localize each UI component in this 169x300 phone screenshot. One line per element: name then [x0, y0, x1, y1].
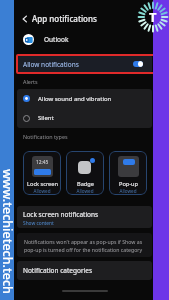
staticText: Allow sound and vibration — [38, 95, 112, 103]
button[interactable]: 12:45 — [23, 151, 61, 195]
staticText: Lock screen notifications — [23, 210, 99, 219]
staticText: Notification categories — [23, 266, 93, 275]
staticText: Alerts — [23, 78, 38, 85]
button[interactable]: Badge — [66, 151, 104, 195]
staticText: T — [149, 8, 157, 26]
staticText: 12:45 — [36, 159, 49, 166]
button[interactable]: Back — [19, 13, 30, 24]
staticText: Notifications won't appear as pop-ups if… — [24, 238, 147, 253]
staticText: Silent — [38, 114, 54, 122]
staticText: Allowed — [33, 188, 51, 194]
button[interactable]: Notification categories — [17, 261, 152, 280]
button[interactable]: Allow sound and vibration — [17, 89, 152, 108]
button[interactable]: Outlook — [23, 34, 69, 45]
staticText: Lock screen — [27, 180, 58, 188]
staticText: www.techietech.tech — [0, 169, 16, 294]
staticText: Allow notifications — [23, 60, 79, 69]
staticText: Outlook — [44, 35, 69, 44]
button[interactable]: Allow notifications — [17, 55, 152, 73]
staticText: Badge — [77, 180, 94, 188]
staticText: Notification types — [23, 133, 68, 140]
staticText: App notifications — [32, 13, 97, 24]
staticText: Pop-up — [119, 180, 138, 188]
staticText: Allowed — [76, 188, 94, 194]
button[interactable]: Silent — [17, 108, 152, 128]
button[interactable]: Pop-up — [109, 151, 147, 195]
staticText: Allowed — [119, 188, 137, 194]
staticText: Show content — [23, 220, 54, 227]
button[interactable]: Lock screen notifications — [17, 206, 152, 228]
